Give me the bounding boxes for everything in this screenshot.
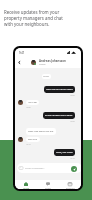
staticText: Hey! Are you home now? — [46, 88, 73, 91]
staticText: 9:41 — [19, 51, 25, 55]
staticText: Online — [39, 63, 46, 66]
staticText: See you! — [28, 138, 38, 141]
staticText: 14:02 — [70, 94, 75, 96]
button[interactable]: Booking — [59, 180, 81, 189]
staticText: 14:12 — [26, 143, 31, 145]
button[interactable]: Back — [17, 60, 22, 65]
staticText: Is the laundry room free? — [45, 114, 73, 117]
button[interactable]: Write a message... — [17, 163, 81, 173]
staticText: Andreas Johansson — [39, 59, 66, 63]
button[interactable]: Chats — [37, 180, 59, 189]
staticText: Receive updates from your property manag… — [4, 9, 68, 27]
staticText: Okay that works for me — [28, 130, 54, 133]
staticText: 14:09 — [70, 120, 75, 122]
staticText: Okay, see soon! — [56, 151, 73, 154]
staticText: Yes I am — [28, 101, 37, 104]
staticText: Home — [23, 187, 30, 189]
staticText: Booking — [66, 187, 75, 189]
staticText: Write a message... — [25, 167, 45, 170]
staticText: 14:13 — [70, 157, 75, 159]
staticText: Today — [43, 75, 50, 78]
staticText: 14:05 — [26, 106, 31, 108]
button[interactable]: Send — [71, 166, 77, 172]
button[interactable]: Home — [15, 180, 37, 189]
staticText: Chats — [45, 187, 51, 189]
